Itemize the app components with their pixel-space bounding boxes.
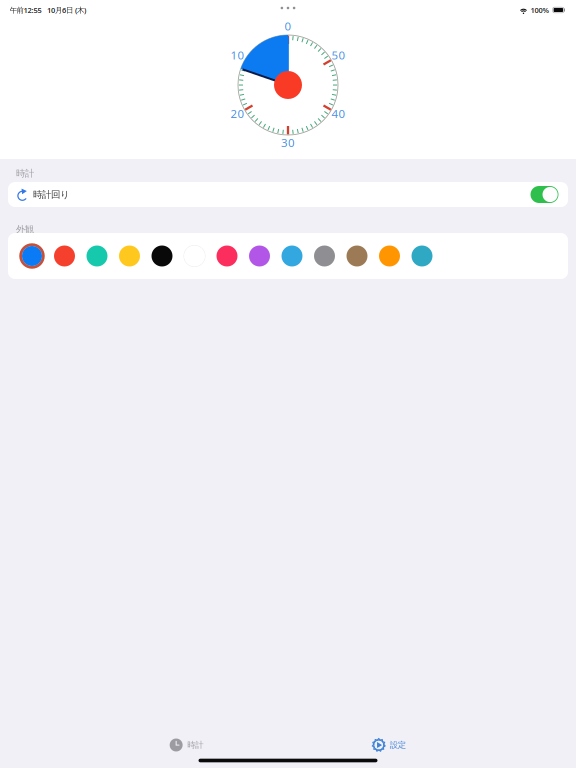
button[interactable]: Color 11 <box>346 245 368 267</box>
staticText: 外観 <box>16 224 34 235</box>
staticText: 時計 <box>187 740 203 750</box>
staticText: 時計 <box>16 168 34 179</box>
staticText: 50 <box>331 47 345 63</box>
button[interactable]: Color 10 <box>313 245 335 267</box>
staticText: 20 <box>230 106 244 121</box>
button[interactable]: Color 12 <box>378 245 400 267</box>
staticText: 10月6日 (木) <box>47 5 86 15</box>
button[interactable]: Color 4 <box>118 245 140 267</box>
staticText: 設定 <box>390 740 406 750</box>
button[interactable]: Color 1 <box>21 245 43 267</box>
staticText: 時計回り <box>33 189 70 200</box>
staticText: 10 <box>230 47 244 63</box>
button[interactable]: Color 2 <box>53 245 75 267</box>
button[interactable]: Color 6 <box>183 245 205 267</box>
staticText: 0 <box>284 18 291 34</box>
button[interactable]: Color 9 <box>281 245 303 267</box>
button[interactable]: 時計 <box>161 732 212 757</box>
staticText: 100% <box>531 5 550 15</box>
button[interactable]: Color 13 <box>411 245 433 267</box>
button[interactable]: Color 5 <box>151 245 173 267</box>
staticText: 40 <box>331 106 345 121</box>
staticText: 30 <box>281 135 295 150</box>
button[interactable]: Color 8 <box>248 245 270 267</box>
button[interactable]: Color 7 <box>216 245 238 267</box>
staticText: 午前12:55 <box>9 5 41 15</box>
button[interactable]: 設定 <box>363 732 415 758</box>
button[interactable]: 時計回り <box>8 182 568 207</box>
button[interactable]: Color 3 <box>86 245 108 267</box>
